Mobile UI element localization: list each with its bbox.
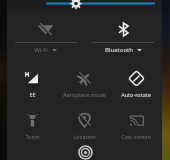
button[interactable]: Location xyxy=(58,109,110,145)
staticText: Bluetooth xyxy=(105,46,133,54)
staticText: Auto-rotate xyxy=(121,91,151,98)
button[interactable]: Auto rotate xyxy=(110,67,162,103)
staticText: Torch xyxy=(25,133,40,140)
button[interactable]: Mobile data xyxy=(7,67,58,103)
staticText: Cast screen xyxy=(121,133,151,140)
button[interactable]: Aeroplane mode xyxy=(58,67,110,103)
button[interactable]: Torch xyxy=(7,109,58,145)
staticText: Aeroplane mode xyxy=(63,91,106,98)
button[interactable]: Hotspot xyxy=(76,145,94,160)
staticText: Wi-Fi xyxy=(34,46,48,54)
button[interactable]: Wi-Fi xyxy=(7,18,84,60)
button[interactable]: Brightness xyxy=(7,0,162,12)
button[interactable]: Cast screen xyxy=(110,109,162,145)
staticText: EE xyxy=(29,91,36,98)
button[interactable]: Bluetooth xyxy=(84,18,162,60)
staticText: Location xyxy=(73,133,96,140)
